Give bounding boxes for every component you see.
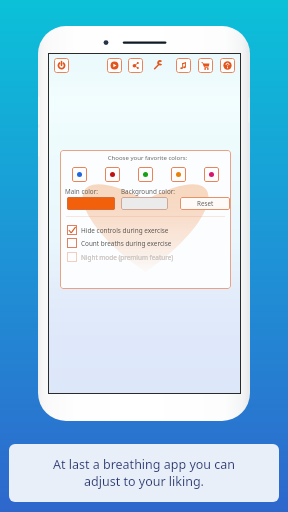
button[interactable]: Hide controls during exercise [67,225,169,235]
button[interactable]: Color swatch [171,167,186,182]
staticText: Background color: [121,187,176,196]
button[interactable]: Reset [180,197,230,210]
button[interactable]: Music [176,58,191,73]
button[interactable]: Color swatch [138,167,153,182]
staticText: Main color: [65,187,98,196]
staticText: Count breaths during exercise [81,239,172,248]
staticText: Choose your favorite colors: [62,154,231,162]
button[interactable]: Settings [150,58,165,73]
button[interactable]: Background color [121,197,168,210]
staticText: Hide controls during exercise [81,226,169,235]
button[interactable]: Color swatch [72,167,87,182]
button[interactable]: Color swatch [105,167,120,182]
button[interactable]: Play [107,58,122,73]
button[interactable]: Night mode (premium feature) [67,252,174,262]
button[interactable]: Main color [67,197,115,210]
staticText: Night mode (premium feature) [81,253,174,262]
button[interactable]: Share [128,58,143,73]
staticText: At last a breathing app you can adjust t… [9,456,279,490]
button[interactable]: Store [198,58,213,73]
button[interactable]: Count breaths during exercise [67,238,172,248]
staticText: Reset [197,199,214,208]
button[interactable]: Color swatch [204,167,219,182]
button[interactable]: Power [54,58,69,73]
button[interactable]: Help [220,58,235,73]
